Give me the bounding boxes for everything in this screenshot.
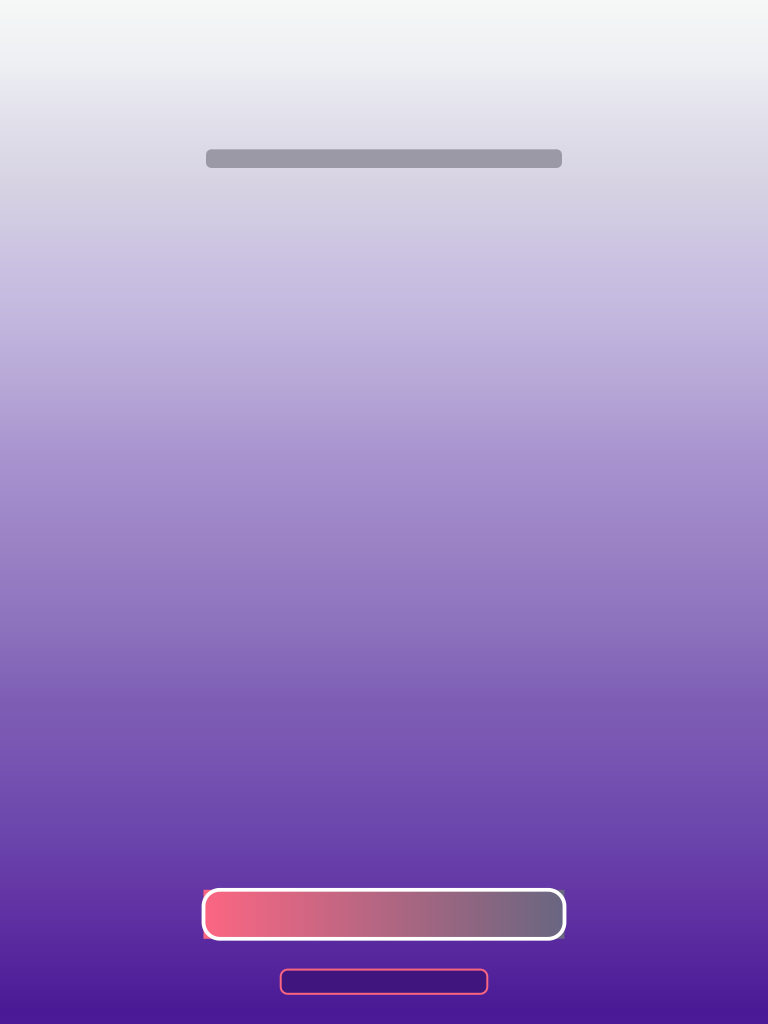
button[interactable]: More options bbox=[281, 970, 487, 994]
button[interactable]: Continue bbox=[203, 890, 564, 939]
